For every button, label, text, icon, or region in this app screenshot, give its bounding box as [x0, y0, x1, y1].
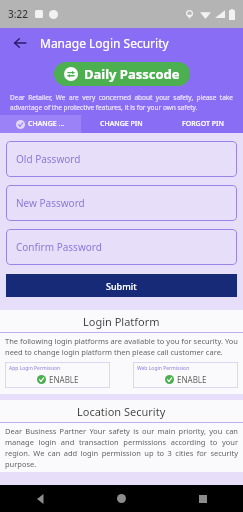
- staticText: CHANGE PIN: [100, 119, 143, 129]
- button[interactable]: Recent apps: [162, 485, 243, 512]
- button[interactable]: CHANGE ...: [0, 115, 81, 133]
- staticText: 3:22: [8, 7, 28, 21]
- staticText: The following login platforms are availa…: [5, 336, 238, 357]
- staticText: Web Login Permission: [137, 365, 190, 372]
- button[interactable]: Confirm Password: [6, 229, 237, 265]
- staticText: Manage Login Security: [40, 35, 169, 51]
- button[interactable]: Back: [0, 28, 40, 58]
- button[interactable]: Daily Passcode: [54, 62, 190, 86]
- staticText: Daily Passcode: [84, 65, 180, 83]
- button[interactable]: New Password: [6, 185, 237, 221]
- button[interactable]: Submit: [6, 274, 237, 297]
- button[interactable]: App Login Permission: [5, 362, 110, 388]
- staticText: Dear Business Partner Your safety is our…: [5, 426, 238, 469]
- button[interactable]: Web Login Permission: [133, 362, 238, 388]
- staticText: Location Security: [77, 404, 166, 419]
- staticText: ENABLE: [49, 374, 79, 385]
- staticText: Login Platform: [83, 314, 160, 329]
- staticText: Old Password: [16, 152, 81, 166]
- staticText: Submit: [106, 280, 137, 292]
- staticText: CHANGE ...: [28, 119, 65, 129]
- button[interactable]: Back: [0, 485, 81, 512]
- staticText: Confirm Password: [16, 240, 102, 254]
- staticText: App Login Permission: [9, 365, 61, 372]
- button[interactable]: Home: [81, 485, 162, 512]
- staticText: ENABLE: [177, 374, 207, 385]
- staticText: New Password: [16, 196, 85, 210]
- staticText: Dear Retailer, We are very concerned abo…: [10, 93, 233, 112]
- button[interactable]: Old Password: [6, 141, 237, 177]
- staticText: FORGOT PIN: [182, 119, 224, 129]
- button[interactable]: CHANGE PIN: [81, 115, 162, 133]
- button[interactable]: FORGOT PIN: [162, 115, 243, 133]
